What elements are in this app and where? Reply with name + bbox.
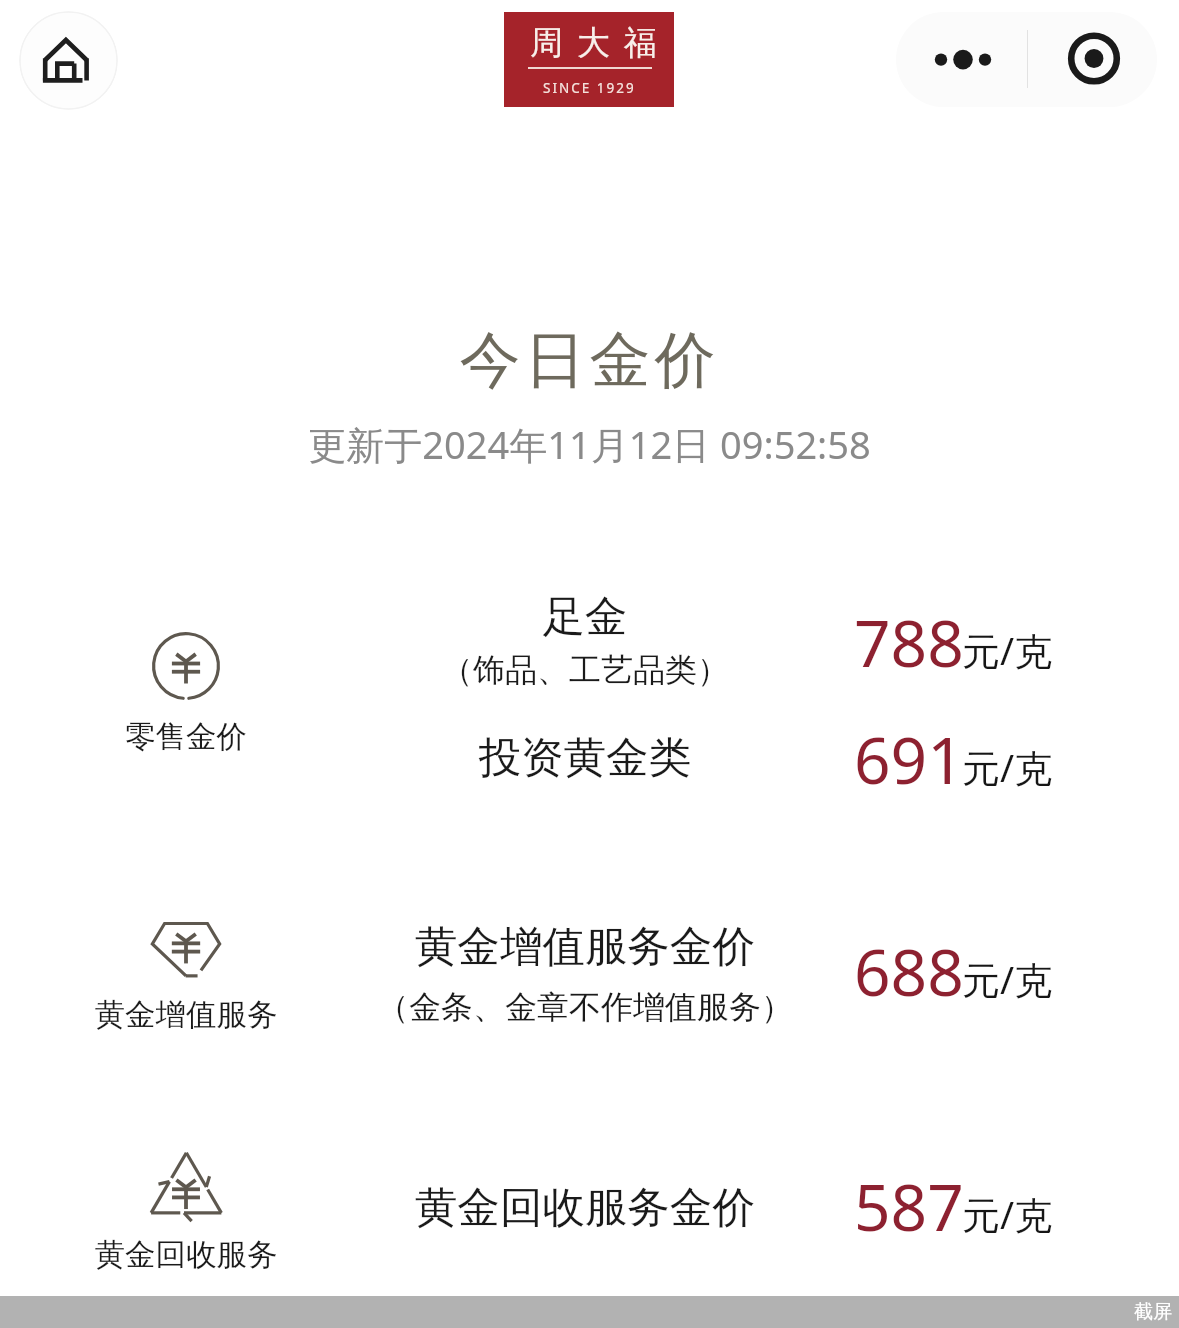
staticText: 黄金回收服务: [85, 1236, 287, 1274]
button[interactable]: 788: [854, 599, 1055, 686]
staticText: 788: [854, 599, 964, 686]
staticText: 691: [854, 716, 964, 803]
button[interactable]: 587: [854, 1163, 1055, 1250]
button[interactable]: 零售金价: [85, 614, 287, 764]
staticText: 足金: [340, 590, 830, 644]
button[interactable]: Home: [19, 11, 118, 110]
staticText: （饰品、工艺品类）: [340, 650, 830, 690]
staticText: 更新于2024年11月12日 09:52:58: [0, 418, 1179, 470]
button[interactable]: 黄金回收服务: [85, 1134, 287, 1284]
staticText: 元/克: [962, 624, 1053, 676]
button[interactable]: 688: [854, 928, 1055, 1015]
button[interactable]: [0, 1135, 1179, 1285]
staticText: 黄金增值服务: [85, 996, 287, 1034]
button[interactable]: [0, 900, 1179, 1135]
staticText: 黄金回收服务金价: [320, 1181, 850, 1235]
staticText: （金条、金章不作增值服务）: [320, 987, 850, 1027]
staticText: 投资黄金类: [340, 731, 830, 785]
staticText: 688: [854, 928, 964, 1015]
button[interactable]: [0, 735, 1179, 900]
staticText: 元/克: [962, 741, 1053, 793]
staticText: 元/克: [962, 953, 1053, 1005]
staticText: 587: [854, 1163, 964, 1250]
button[interactable]: 黄金增值服务: [85, 897, 287, 1047]
staticText: 零售金价: [85, 718, 287, 756]
button[interactable]: Chow Tai Fook logo: [504, 12, 674, 107]
staticText: 周大福: [523, 22, 664, 64]
staticText: 黄金增值服务金价: [320, 920, 850, 974]
button[interactable]: More options: [896, 12, 1028, 107]
button[interactable]: [0, 570, 1179, 735]
staticText: 截屏: [1134, 1300, 1172, 1324]
button[interactable]: 691: [854, 716, 1055, 803]
staticText: 元/克: [962, 1188, 1053, 1240]
button[interactable]: Close: [1028, 12, 1157, 107]
staticText: 今日金价: [0, 322, 1179, 399]
staticText: SINCE 1929: [543, 79, 636, 97]
